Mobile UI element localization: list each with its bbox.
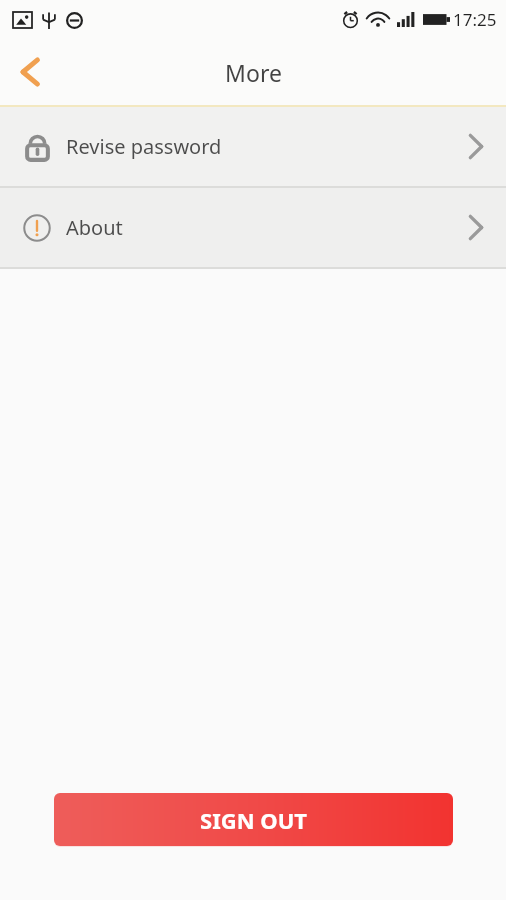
staticText: 17:25 xyxy=(453,8,497,31)
staticText: About xyxy=(66,214,123,241)
button[interactable]: Revise password xyxy=(0,107,506,186)
button[interactable]: About xyxy=(0,188,506,267)
staticText: SIGN OUT xyxy=(200,805,307,835)
button[interactable]: Back xyxy=(0,43,58,101)
button[interactable]: SIGN OUT xyxy=(54,793,453,846)
staticText: Revise password xyxy=(66,133,222,160)
staticText: More xyxy=(225,57,282,88)
